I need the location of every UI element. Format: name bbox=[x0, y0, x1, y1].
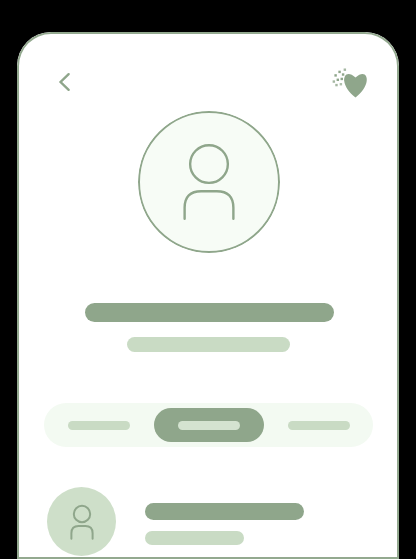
button[interactable]: Profile photo bbox=[138, 111, 280, 253]
button[interactable]: Tab three bbox=[264, 403, 373, 447]
button[interactable]: Favorite bbox=[327, 58, 377, 108]
button[interactable]: Tab one bbox=[44, 403, 154, 447]
button[interactable]: Back bbox=[41, 58, 89, 106]
button[interactable] bbox=[30, 483, 386, 559]
button[interactable]: Tab two, selected bbox=[154, 403, 264, 447]
